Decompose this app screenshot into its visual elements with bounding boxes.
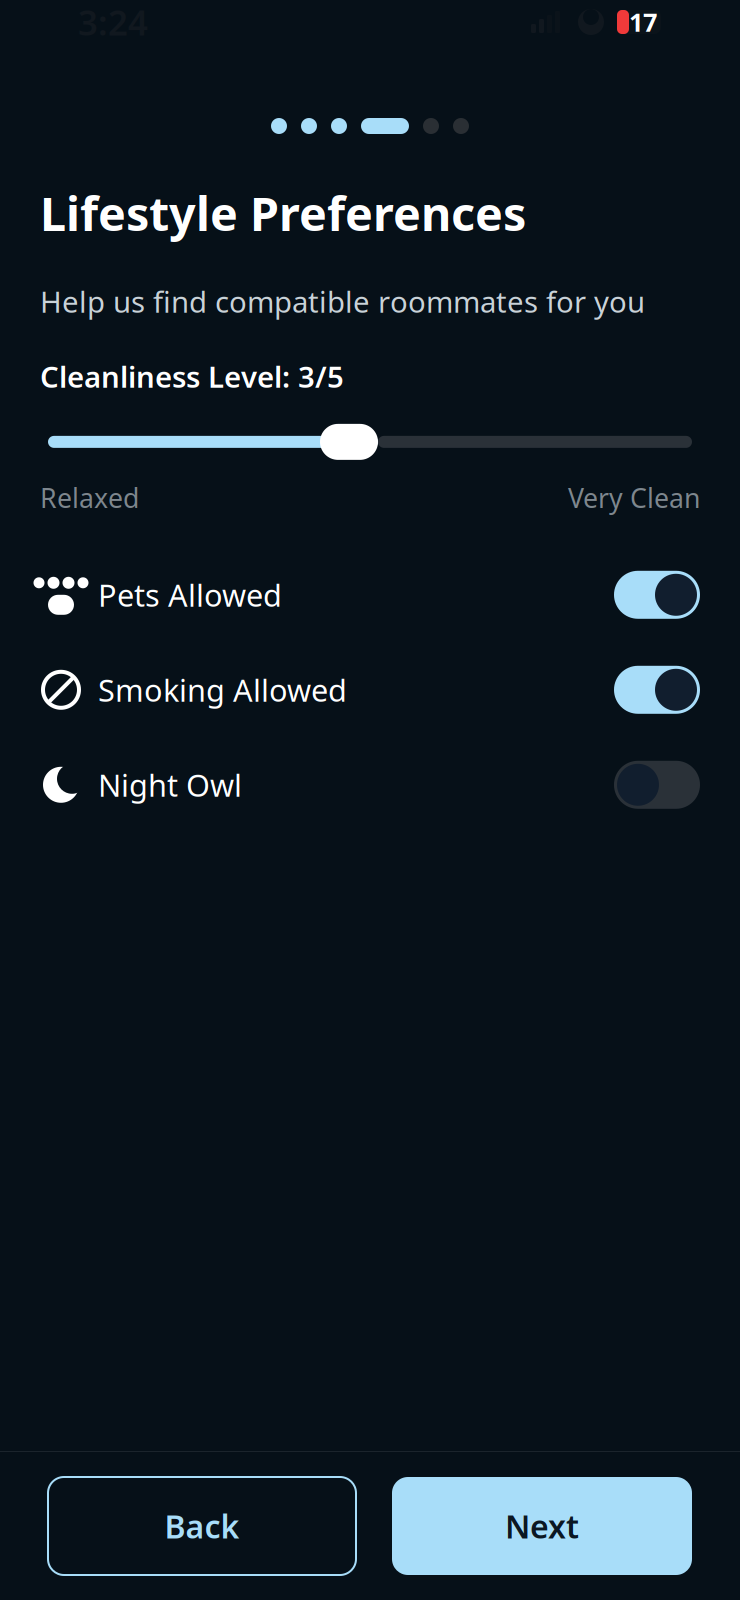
staticText: 3:24 <box>78 0 148 45</box>
staticText: Help us find compatible roommates for yo… <box>40 282 645 321</box>
staticText: Pets Allowed <box>98 574 282 615</box>
staticText: Smoking Allowed <box>98 669 347 710</box>
staticText: Next <box>505 1505 579 1547</box>
staticText: Lifestyle Preferences <box>40 182 526 244</box>
button[interactable]: Back <box>48 1477 356 1575</box>
staticText: Very Clean <box>568 480 700 515</box>
staticText: Relaxed <box>40 480 139 515</box>
staticText: Cleanliness Level: 3/5 <box>40 357 344 396</box>
button[interactable]: Smoking Allowed <box>0 642 740 737</box>
button[interactable]: Pets Allowed <box>0 547 740 642</box>
button[interactable]: Night Owl <box>0 737 740 832</box>
button[interactable]: Next <box>392 1477 692 1575</box>
staticText: Night Owl <box>98 764 242 805</box>
staticText: 17 <box>629 5 657 39</box>
staticText: Back <box>164 1505 239 1547</box>
